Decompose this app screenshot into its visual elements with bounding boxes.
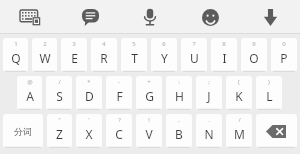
staticText: "	[58, 116, 61, 124]
button[interactable]: ?	[106, 114, 132, 148]
button[interactable]: (	[226, 76, 252, 110]
staticText: 8	[222, 40, 226, 48]
staticText: ;	[208, 78, 210, 86]
staticText: C	[115, 126, 123, 142]
staticText: S	[56, 88, 63, 104]
staticText: W	[39, 50, 51, 66]
button[interactable]: 9	[241, 38, 267, 72]
button[interactable]: :	[166, 76, 192, 110]
button[interactable]: @	[17, 76, 42, 110]
staticText: /	[238, 116, 241, 124]
button[interactable]: .	[196, 114, 222, 148]
button[interactable]: ;	[196, 76, 222, 110]
button[interactable]: Emoji	[180, 0, 240, 34]
staticText: 0	[282, 40, 286, 48]
staticText: /	[58, 78, 61, 86]
button[interactable]: Voice input	[120, 0, 180, 34]
staticText: O	[249, 50, 259, 66]
staticText: Z	[56, 126, 63, 142]
staticText: G	[145, 88, 154, 104]
button[interactable]: 6	[151, 38, 177, 72]
staticText: *	[87, 78, 91, 86]
staticText: I	[222, 50, 227, 66]
staticText: 7	[192, 40, 196, 48]
button[interactable]: 7	[181, 38, 207, 72]
button[interactable]: )	[256, 76, 282, 110]
staticText: P	[280, 50, 288, 66]
staticText: V	[145, 126, 153, 142]
staticText: '	[88, 116, 90, 124]
staticText: @	[27, 78, 33, 86]
staticText: Q	[11, 50, 21, 66]
button[interactable]: *	[76, 76, 102, 110]
staticText: 1	[14, 40, 18, 48]
button[interactable]: 1	[3, 38, 28, 72]
staticText: R	[100, 50, 108, 66]
button[interactable]: '	[76, 114, 102, 148]
staticText: 9	[252, 40, 256, 48]
button[interactable]: -	[106, 76, 132, 110]
button[interactable]: 3	[61, 38, 87, 72]
button[interactable]: 4	[91, 38, 117, 72]
staticText: ?	[118, 116, 121, 124]
staticText: 分词	[14, 126, 32, 137]
staticText: N	[204, 126, 214, 142]
button[interactable]: 5	[121, 38, 147, 72]
staticText: K	[235, 88, 243, 104]
button[interactable]: 0	[271, 38, 297, 72]
button[interactable]: 2	[32, 38, 57, 72]
staticText: L	[266, 88, 273, 104]
staticText: 2	[43, 40, 47, 48]
staticText: :	[178, 78, 180, 86]
button[interactable]: /	[46, 76, 72, 110]
staticText: +	[147, 78, 151, 86]
staticText: A	[26, 88, 34, 104]
staticText: H	[175, 88, 184, 104]
staticText: J	[207, 88, 211, 104]
button[interactable]: /	[226, 114, 252, 148]
button[interactable]: Hide keyboard	[240, 0, 300, 34]
staticText: !	[148, 116, 150, 124]
staticText: 5	[132, 40, 136, 48]
button[interactable]: 8	[211, 38, 237, 72]
button[interactable]: +	[136, 76, 162, 110]
staticText: U	[190, 50, 199, 66]
staticText: E	[71, 50, 78, 66]
staticText: -	[118, 78, 120, 86]
staticText: T	[131, 50, 138, 66]
button[interactable]: 分词	[3, 114, 43, 148]
staticText: D	[85, 88, 94, 104]
staticText: M	[234, 126, 245, 142]
staticText: 4	[102, 40, 106, 48]
button[interactable]: Conversation	[60, 0, 120, 34]
button[interactable]: Backspace	[256, 114, 297, 148]
staticText: 3	[72, 40, 76, 48]
staticText: F	[116, 88, 123, 104]
staticText: .	[208, 116, 210, 124]
staticText: )	[268, 78, 270, 86]
staticText: Y	[161, 50, 168, 66]
staticText: X	[85, 126, 93, 142]
staticText: (	[238, 78, 240, 86]
staticText: B	[175, 126, 183, 142]
staticText: 6	[162, 40, 166, 48]
button[interactable]: !	[136, 114, 162, 148]
button[interactable]: ,	[166, 114, 192, 148]
button[interactable]: Keyboard settings	[0, 0, 60, 34]
staticText: ,	[178, 116, 180, 124]
button[interactable]: "	[47, 114, 72, 148]
